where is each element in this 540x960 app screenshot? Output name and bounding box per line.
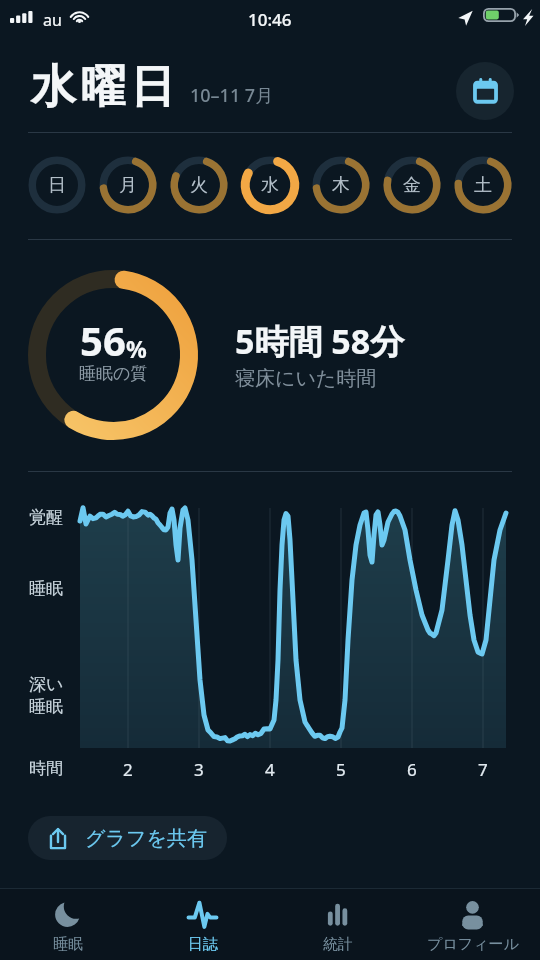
- staticText: %: [126, 333, 147, 364]
- button[interactable]: 日誌: [135, 892, 270, 960]
- staticText: プロフィール: [427, 935, 519, 954]
- button[interactable]: 睡眠: [0, 892, 135, 960]
- staticText: 睡眠: [53, 935, 83, 954]
- button[interactable]: プロフィール: [405, 892, 540, 960]
- staticText: 日誌: [188, 935, 218, 954]
- staticText: 統計: [323, 935, 353, 954]
- staticText: au: [43, 9, 62, 31]
- staticText: 睡眠: [29, 578, 63, 599]
- button[interactable]: 日: [28, 156, 86, 214]
- button[interactable]: グラフを共有: [28, 816, 227, 860]
- button[interactable]: 統計: [270, 892, 405, 960]
- button[interactable]: 火: [170, 156, 228, 214]
- staticText: 寝床にいた時間: [235, 366, 377, 391]
- staticText: 6: [407, 758, 417, 780]
- staticText: 覚醒: [29, 507, 63, 528]
- staticText: 木: [332, 174, 350, 197]
- staticText: 土: [474, 174, 492, 197]
- staticText: 深い 睡眠: [29, 674, 64, 717]
- staticText: 水曜日: [31, 59, 180, 116]
- staticText: 日: [48, 174, 66, 197]
- button[interactable]: 金: [383, 156, 441, 214]
- staticText: 火: [190, 174, 208, 197]
- staticText: 4: [265, 758, 275, 780]
- staticText: 睡眠の質: [79, 363, 148, 384]
- staticText: グラフを共有: [85, 826, 207, 851]
- staticText: 7: [478, 758, 488, 780]
- button[interactable]: カレンダー: [456, 62, 514, 120]
- staticText: 時間: [29, 758, 63, 779]
- staticText: 56: [80, 313, 126, 367]
- button[interactable]: 木: [312, 156, 370, 214]
- button[interactable]: 土: [454, 156, 512, 214]
- staticText: 2: [123, 758, 133, 780]
- staticText: 月: [119, 174, 137, 197]
- staticText: 10:46: [248, 8, 292, 31]
- staticText: 5時間 58分: [235, 318, 405, 364]
- staticText: 10–11 7月: [190, 83, 274, 108]
- staticText: 水: [261, 174, 279, 197]
- staticText: 5: [336, 758, 346, 780]
- staticText: 3: [194, 758, 204, 780]
- button[interactable]: 月: [99, 156, 157, 214]
- staticText: 金: [403, 174, 421, 197]
- button[interactable]: 水: [241, 156, 299, 214]
